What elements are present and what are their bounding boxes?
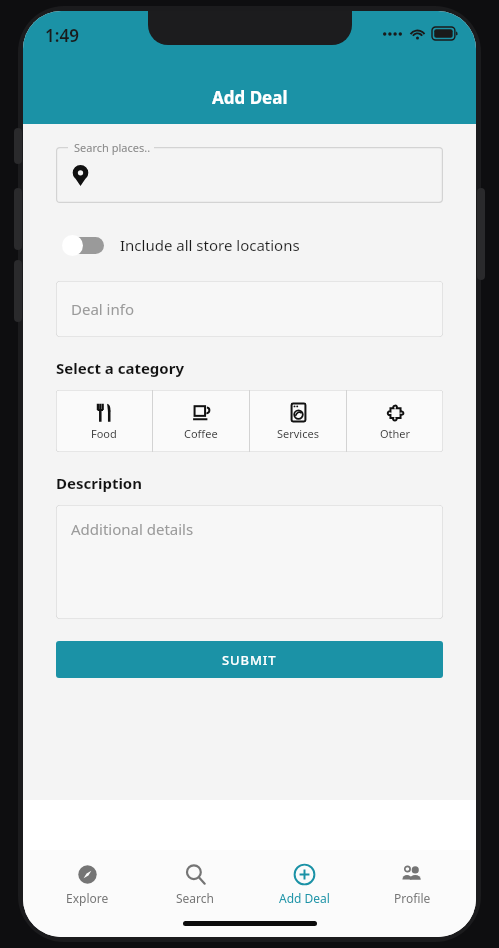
staticText: Add Deal (279, 890, 330, 906)
staticText: Search (176, 890, 214, 906)
staticText: Search places.. (74, 140, 151, 155)
button[interactable]: Search places.. (56, 147, 443, 203)
button[interactable]: Other (347, 390, 443, 452)
button[interactable]: Food (56, 390, 152, 452)
button[interactable]: Explore (42, 863, 132, 906)
staticText: Description (56, 473, 142, 493)
button[interactable]: Services (250, 390, 346, 452)
staticText: Deal info (71, 299, 134, 319)
staticText: Other (380, 426, 411, 441)
staticText: Select a category (56, 358, 184, 378)
staticText: Include all store locations (120, 235, 300, 255)
button[interactable]: Include all store locations (56, 227, 443, 263)
staticText: 1:49 (45, 24, 79, 47)
button[interactable]: Search (150, 863, 240, 906)
button[interactable]: Additional details (56, 505, 443, 619)
staticText: Add Deal (212, 86, 288, 109)
staticText: Food (91, 426, 117, 441)
button[interactable]: Deal info (56, 281, 443, 337)
button[interactable]: Add Deal (259, 863, 349, 906)
staticText: Additional details (71, 519, 194, 539)
staticText: Services (277, 426, 319, 441)
button[interactable]: SUBMIT (56, 641, 443, 678)
staticText: Coffee (184, 426, 218, 441)
staticText: Explore (66, 890, 109, 906)
button[interactable]: Coffee (153, 390, 249, 452)
button[interactable]: Profile (367, 863, 457, 906)
staticText: Profile (394, 890, 431, 906)
staticText: SUBMIT (222, 651, 277, 669)
